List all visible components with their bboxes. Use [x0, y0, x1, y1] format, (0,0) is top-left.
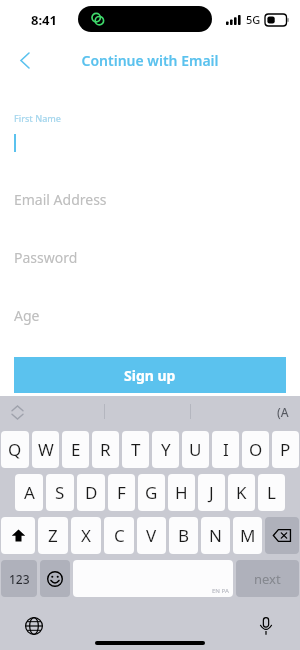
button[interactable]: W — [32, 431, 59, 468]
staticText: 5G — [246, 12, 261, 27]
staticText: E — [71, 438, 81, 461]
button[interactable]: Z — [38, 517, 68, 554]
button[interactable]: Sign up — [14, 357, 286, 393]
button[interactable]: next — [236, 560, 299, 597]
button[interactable]: A — [15, 474, 43, 511]
staticText: W — [38, 438, 54, 461]
staticText: 123 — [9, 571, 30, 587]
button[interactable]: T — [122, 431, 149, 468]
staticText: D — [85, 481, 98, 504]
button[interactable]: Delete — [265, 517, 299, 554]
button[interactable]: N — [201, 517, 230, 554]
button[interactable]: P — [272, 431, 299, 468]
staticText: First Name — [14, 112, 61, 124]
button[interactable]: G — [138, 474, 165, 511]
staticText: Continue with Email — [0, 51, 300, 70]
staticText: next — [254, 570, 281, 588]
staticText: K — [236, 481, 247, 504]
staticText: I — [223, 438, 229, 461]
staticText: B — [178, 524, 190, 547]
staticText: T — [131, 438, 141, 461]
button[interactable]: K — [228, 474, 255, 511]
button[interactable]: Back — [8, 43, 42, 77]
button[interactable]: B — [169, 517, 198, 554]
button[interactable]: S — [46, 474, 74, 511]
button[interactable]: D — [77, 474, 105, 511]
staticText: M — [240, 524, 256, 547]
staticText: Age — [14, 306, 40, 325]
button[interactable]: Q — [1, 431, 29, 468]
button[interactable]: Dictation — [252, 612, 280, 640]
staticText: C — [114, 524, 125, 547]
staticText: Q — [8, 438, 22, 461]
staticText: R — [100, 438, 111, 461]
button[interactable]: First Name — [14, 112, 286, 170]
button[interactable]: X — [71, 517, 101, 554]
staticText: O — [249, 438, 263, 461]
button[interactable]: H — [168, 474, 195, 511]
button[interactable]: Y — [152, 431, 179, 468]
button[interactable]: Emoji — [40, 560, 70, 597]
button[interactable]: U — [182, 431, 209, 468]
button[interactable]: I — [212, 431, 239, 468]
staticText: EN PA — [212, 587, 229, 595]
staticText: (A — [277, 404, 289, 420]
button[interactable]: L — [258, 474, 285, 511]
staticText: X — [81, 524, 91, 547]
staticText: Sign up — [124, 366, 176, 385]
staticText: 8:41 — [31, 11, 57, 29]
staticText: V — [146, 524, 157, 547]
staticText: A — [24, 481, 35, 504]
button[interactable]: Email Address — [14, 170, 286, 228]
button[interactable]: Password — [14, 228, 286, 286]
button[interactable]: C — [104, 517, 134, 554]
staticText: J — [209, 481, 214, 504]
button[interactable]: V — [137, 517, 166, 554]
button[interactable]: R — [92, 431, 119, 468]
button[interactable]: Hide keyboard — [270, 399, 296, 425]
staticText: Z — [48, 524, 58, 547]
staticText: G — [145, 481, 158, 504]
button[interactable]: Age — [14, 286, 286, 344]
staticText: Y — [161, 438, 171, 461]
staticText: Password — [14, 248, 78, 267]
staticText: U — [189, 438, 202, 461]
button[interactable]: Shift — [1, 517, 35, 554]
button[interactable]: 123 — [1, 560, 37, 597]
button[interactable]: J — [198, 474, 225, 511]
staticText: Email Address — [14, 190, 107, 209]
button[interactable]: F — [108, 474, 135, 511]
button[interactable]: Previous or next field — [4, 399, 30, 425]
button[interactable]: E — [62, 431, 89, 468]
staticText: S — [55, 481, 65, 504]
staticText: N — [209, 524, 222, 547]
staticText: L — [267, 481, 276, 504]
staticText: F — [117, 481, 126, 504]
staticText: H — [175, 481, 188, 504]
button[interactable]: Space — [73, 560, 233, 597]
button[interactable]: Change keyboard language — [20, 612, 48, 640]
button[interactable]: M — [233, 517, 262, 554]
staticText: P — [280, 438, 291, 461]
button[interactable]: O — [242, 431, 269, 468]
